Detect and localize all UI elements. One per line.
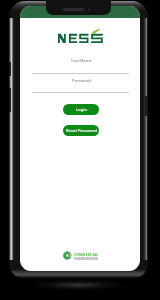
staticText: Password — [72, 78, 91, 84]
button[interactable]: Login — [63, 104, 99, 115]
staticText: Reset Password — [66, 128, 97, 134]
staticText: Login — [76, 107, 87, 113]
staticText: ENGINEERING — [74, 256, 99, 260]
staticText: COMMERCIAL — [74, 252, 99, 256]
button[interactable]: Reset Password — [63, 125, 99, 136]
staticText: UserName — [71, 58, 92, 64]
